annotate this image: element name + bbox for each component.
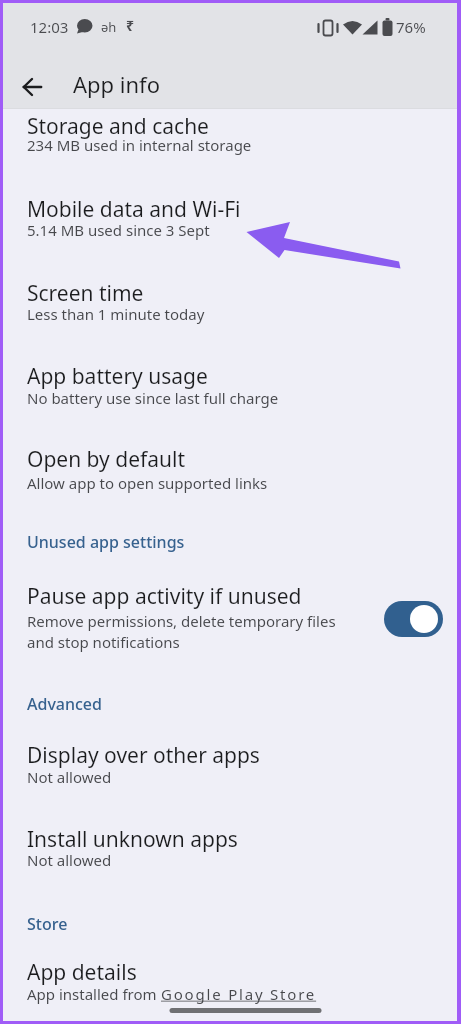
- button[interactable]: [0, 566, 461, 666]
- staticText: ǝh: [101, 18, 117, 36]
- staticText: ₹: [126, 16, 135, 35]
- staticText: 12:03: [30, 17, 69, 37]
- staticText: Unused app settings: [27, 531, 185, 553]
- staticText: No battery use since last full charge: [27, 388, 279, 408]
- button[interactable]: [0, 725, 461, 803]
- button[interactable]: [384, 601, 443, 637]
- staticText: Store: [27, 913, 68, 935]
- button[interactable]: [0, 429, 461, 507]
- button[interactable]: [0, 96, 461, 174]
- staticText: Storage and cache: [27, 112, 209, 141]
- staticText: Not allowed: [27, 767, 112, 787]
- staticText: Advanced: [27, 693, 102, 715]
- staticText: Not allowed: [27, 850, 112, 870]
- staticText: 76%: [396, 17, 426, 37]
- button[interactable]: [0, 179, 461, 257]
- staticText: App info: [73, 69, 160, 99]
- staticText: 234 MB used in internal storage: [27, 135, 252, 155]
- staticText: Screen time: [27, 279, 144, 308]
- staticText: Pause app activity if unused: [27, 582, 302, 611]
- staticText: App installed from: [27, 984, 161, 1004]
- staticText: Install unknown apps: [27, 825, 238, 854]
- staticText: Less than 1 minute today: [27, 304, 205, 324]
- button[interactable]: [10, 65, 54, 109]
- button[interactable]: [0, 263, 461, 341]
- staticText: 5.14 MB used since 3 Sept: [27, 220, 210, 240]
- staticText: Display over other apps: [27, 741, 260, 770]
- staticText: and stop notifications: [27, 632, 180, 652]
- button[interactable]: [0, 947, 461, 1017]
- staticText: Mobile data and Wi-Fi: [27, 195, 241, 224]
- button[interactable]: [0, 346, 461, 424]
- button[interactable]: [0, 809, 461, 887]
- staticText: Allow app to open supported links: [27, 473, 268, 493]
- staticText: App details: [27, 958, 137, 987]
- staticText: Open by default: [27, 445, 186, 474]
- staticText: Remove permissions, delete temporary fil…: [27, 611, 336, 631]
- staticText: Google Play Store: [161, 984, 317, 1004]
- staticText: App battery usage: [27, 362, 208, 391]
